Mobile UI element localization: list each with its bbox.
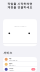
staticText: 드라이브: [9, 68, 13, 69]
staticText: 일정 가져오기: [9, 64, 15, 66]
staticText: 서비스: [3, 51, 12, 54]
staticText: 연결: [32, 68, 34, 70]
button[interactable]: 메일: [3, 57, 37, 62]
staticText: 연결된 계정이 아직 없습니다: [14, 25, 26, 27]
button[interactable]: 캘린더: [3, 62, 37, 67]
staticText: 파일 업로드: [9, 69, 14, 71]
staticText: 메일: [9, 58, 11, 59]
button[interactable]: 드라이브: [3, 67, 37, 72]
staticText: 받은 편지함 동기화: [9, 59, 17, 61]
staticText: 작업을 시작하려면: [7, 2, 32, 6]
staticText: 계정을 연결하세요: [7, 6, 32, 9]
staticText: 캘린더: [9, 63, 12, 64]
